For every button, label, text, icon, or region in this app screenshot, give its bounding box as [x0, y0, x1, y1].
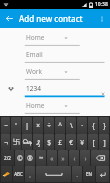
- staticText: «: [50, 154, 54, 163]
- staticText: ÷: [47, 121, 51, 130]
- button[interactable]: ^: [55, 117, 65, 134]
- staticText: £: [58, 138, 62, 147]
- staticText: ^: [58, 121, 62, 130]
- button[interactable]: 1234: [0, 82, 110, 99]
- button[interactable]: ©: [15, 150, 24, 166]
- button[interactable]: ¬: [1, 134, 10, 150]
- staticText: {: [92, 121, 95, 130]
- button[interactable]: .: [72, 166, 82, 182]
- staticText: »: [61, 154, 65, 163]
- staticText: 1234: [26, 84, 41, 93]
- staticText: ]: [103, 138, 106, 147]
- button[interactable]: Enter: [96, 166, 109, 182]
- staticText: [: [92, 138, 95, 147]
- staticText: ': [15, 121, 17, 130]
- button[interactable]: |: [22, 117, 32, 134]
- button[interactable]: More options: [94, 11, 110, 27]
- staticText: Home: [26, 101, 45, 110]
- button[interactable]: ,: [25, 166, 35, 182]
- staticText: |: [25, 121, 29, 130]
- staticText: Home: [26, 33, 45, 42]
- button[interactable]: »: [58, 150, 68, 166]
- staticText: ·: [81, 121, 83, 130]
- staticText: ABC: [14, 171, 23, 177]
- staticText: EN: [86, 171, 92, 177]
- staticText: }: [103, 121, 106, 130]
- staticText: ௸: [22, 139, 32, 146]
- button[interactable]: ›: [80, 150, 90, 166]
- staticText: ~: [4, 121, 8, 130]
- button[interactable]: ₰: [33, 134, 43, 150]
- button[interactable]: ·: [77, 117, 87, 134]
- staticText: ›: [84, 154, 87, 163]
- staticText: $: [47, 138, 51, 147]
- button[interactable]: ™: [36, 150, 46, 166]
- staticText: ,: [29, 170, 31, 179]
- button[interactable]: ABC: [13, 166, 24, 182]
- staticText: 10:38: [95, 1, 108, 8]
- button[interactable]: Home: [0, 99, 110, 116]
- button[interactable]: [: [88, 134, 98, 150]
- button[interactable]: «: [47, 150, 57, 166]
- staticText: ©: [17, 154, 23, 163]
- button[interactable]: \: [66, 117, 76, 134]
- staticText: €: [69, 138, 73, 147]
- staticText: Add new contact: [19, 13, 94, 24]
- button[interactable]: ¥: [77, 134, 87, 150]
- button[interactable]: Email: [0, 48, 110, 65]
- button[interactable]: Back: [0, 9, 19, 28]
- staticText: ₰: [36, 138, 40, 147]
- staticText: ™: [39, 155, 43, 161]
- button[interactable]: }: [99, 117, 109, 134]
- button[interactable]: ‹: [69, 150, 79, 166]
- button[interactable]: €: [66, 134, 76, 150]
- staticText: Email: [26, 50, 43, 59]
- button[interactable]: ~: [1, 117, 10, 134]
- button[interactable]: ®: [25, 150, 35, 166]
- button[interactable]: ÷: [44, 117, 54, 134]
- staticText: ‹: [73, 154, 76, 163]
- button[interactable]: {: [88, 117, 98, 134]
- staticText: ®: [27, 154, 33, 163]
- button[interactable]: EN: [83, 166, 95, 182]
- button[interactable]: $: [44, 134, 54, 150]
- button[interactable]: ]: [99, 134, 109, 150]
- staticText: ¬: [4, 138, 8, 147]
- button[interactable]: Home: [0, 31, 110, 48]
- staticText: 卐: [13, 138, 20, 146]
- button[interactable]: Emoji: [1, 166, 12, 182]
- staticText: ¥: [80, 138, 84, 147]
- button[interactable]: ×: [33, 117, 43, 134]
- staticText: ×: [36, 121, 40, 130]
- button[interactable]: Work: [0, 65, 110, 82]
- button[interactable]: Space: [36, 166, 71, 182]
- staticText: 2/2: [4, 155, 11, 161]
- button[interactable]: ௸: [22, 134, 32, 150]
- button[interactable]: £: [55, 134, 65, 150]
- button[interactable]: 2/2: [1, 150, 14, 166]
- staticText: Work: [26, 67, 43, 76]
- staticText: \: [70, 121, 73, 130]
- button[interactable]: 卐: [11, 134, 21, 150]
- button[interactable]: Clear text: [99, 90, 107, 98]
- button[interactable]: Backspace: [91, 150, 109, 166]
- button[interactable]: ': [11, 117, 21, 134]
- staticText: .: [76, 170, 78, 179]
